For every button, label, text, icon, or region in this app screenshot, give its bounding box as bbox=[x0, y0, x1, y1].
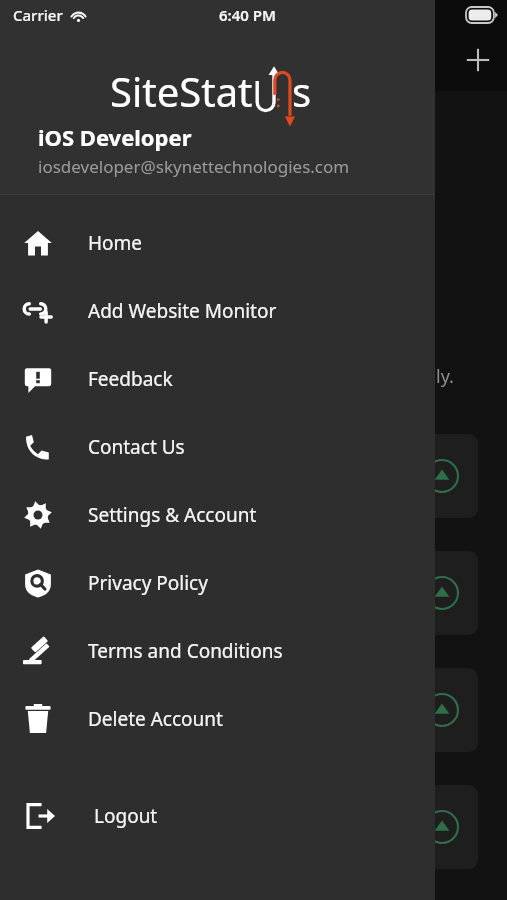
button[interactable]: Add website bbox=[458, 40, 498, 80]
staticText: Add Website Monitor bbox=[88, 298, 277, 324]
staticText: Carrier bbox=[13, 5, 63, 25]
button[interactable]: Terms and Conditions bbox=[0, 617, 435, 685]
staticText: s bbox=[292, 64, 312, 118]
staticText: iOS Developer bbox=[38, 122, 192, 152]
button[interactable]: Feedback bbox=[0, 345, 435, 413]
button[interactable]: Privacy Policy bbox=[0, 549, 435, 617]
staticText: iosdeveloper@skynettechnologies.com bbox=[38, 155, 350, 178]
button[interactable]: Contact Us bbox=[0, 413, 435, 481]
staticText: Home bbox=[88, 230, 143, 256]
button[interactable]: Settings & Account bbox=[0, 481, 435, 549]
staticText: Settings & Account bbox=[88, 502, 257, 528]
button[interactable]: Home bbox=[0, 209, 435, 277]
staticText: 6:40 PM bbox=[219, 5, 276, 25]
staticText: ly. bbox=[436, 364, 454, 389]
staticText: Logout bbox=[94, 803, 158, 829]
staticText: Feedback bbox=[88, 366, 173, 392]
staticText: Contact Us bbox=[88, 434, 185, 460]
staticText: Terms and Conditions bbox=[88, 638, 283, 664]
button[interactable]: Logout bbox=[0, 782, 435, 850]
button[interactable]: Add Website Monitor bbox=[0, 277, 435, 345]
other: Battery bbox=[466, 7, 498, 23]
staticText: SiteStat bbox=[110, 64, 253, 118]
staticText: Delete Account bbox=[88, 706, 223, 732]
button[interactable]: Delete Account bbox=[0, 685, 435, 753]
staticText: Privacy Policy bbox=[88, 570, 208, 596]
